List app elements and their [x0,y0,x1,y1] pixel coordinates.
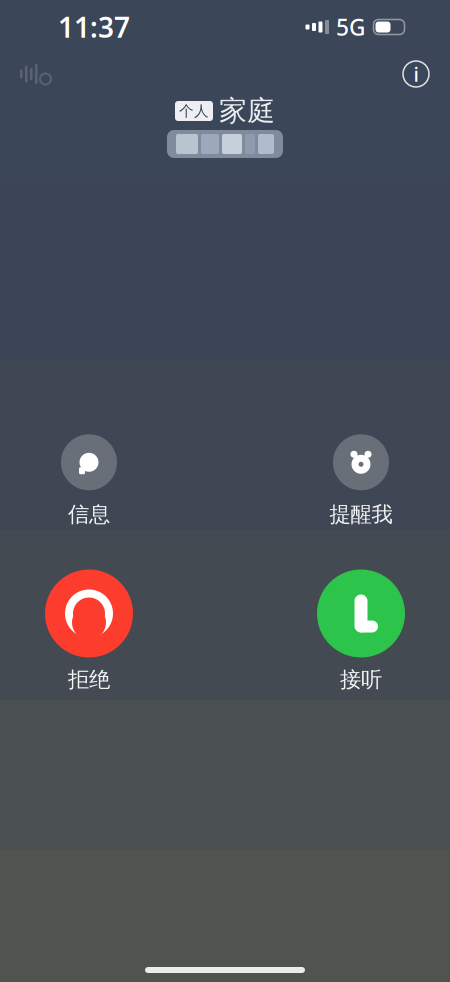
staticText: 接听 [340,666,382,693]
staticText: 11:37 [58,8,130,46]
staticText: 信息 [68,501,110,527]
staticText: 提醒我 [329,501,392,527]
button[interactable]: 信息 [34,434,144,527]
button[interactable]: 提醒我 [306,434,416,527]
button[interactable]: 接听 [301,569,421,693]
staticText: 个人 [179,102,209,120]
staticText: 5G [336,12,365,42]
staticText: 家庭 [219,94,275,128]
staticText: i [413,61,418,87]
button[interactable]: Call info [398,56,434,92]
button[interactable]: 拒绝 [29,569,149,693]
staticText: 拒绝 [68,666,110,693]
